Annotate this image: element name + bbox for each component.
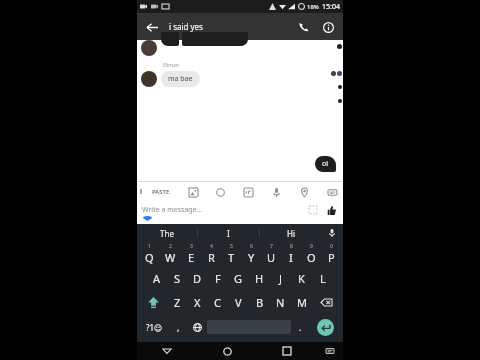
button[interactable]: Hi — [260, 224, 321, 242]
staticText: Write a message... — [142, 205, 203, 215]
button[interactable]: I — [198, 224, 259, 242]
staticText: 7 — [270, 243, 273, 250]
button[interactable]: V — [228, 290, 249, 314]
button[interactable]: Gallery — [186, 185, 200, 199]
staticText: L — [320, 271, 326, 286]
staticText: 18% — [307, 3, 319, 11]
staticText: E — [188, 250, 195, 265]
staticText: U — [267, 250, 276, 265]
button[interactable]: 1 — [139, 242, 160, 266]
button[interactable]: H — [249, 266, 270, 290]
staticText: ma bae — [168, 74, 193, 84]
button[interactable]: ma bae — [161, 71, 200, 87]
button[interactable]: D — [187, 266, 207, 290]
button[interactable]: Voice — [269, 185, 283, 199]
button[interactable]: A — [147, 266, 167, 290]
button[interactable]: Z — [167, 290, 187, 314]
button[interactable]: 9 — [301, 242, 321, 266]
button[interactable]: J — [270, 266, 291, 290]
button[interactable]: M — [291, 290, 312, 314]
staticText: Q — [145, 250, 154, 265]
button[interactable]: X — [187, 290, 207, 314]
button[interactable]: . — [291, 314, 309, 340]
staticText: F — [215, 271, 221, 286]
button[interactable]: 2 — [160, 242, 181, 266]
button[interactable]: , — [169, 314, 187, 340]
staticText: W — [165, 250, 176, 265]
staticText: 6 — [250, 243, 253, 250]
button[interactable]: Emoji — [213, 185, 227, 199]
staticText: I — [289, 250, 293, 265]
button[interactable]: Shift — [139, 290, 167, 314]
staticText: Y — [248, 250, 255, 265]
button[interactable]: Backspace — [312, 290, 341, 314]
staticText: C — [214, 295, 221, 310]
button[interactable]: 3 — [181, 242, 201, 266]
staticText: S — [174, 271, 181, 286]
staticText: T — [228, 250, 235, 265]
staticText: D — [193, 271, 202, 286]
button[interactable]: 0 — [321, 242, 341, 266]
button[interactable]: PASTE — [149, 186, 173, 198]
button[interactable]: More — [325, 185, 339, 199]
staticText: 8 — [290, 243, 293, 250]
button[interactable]: 7 — [261, 242, 281, 266]
staticText: R — [208, 250, 215, 265]
button[interactable]: 8 — [281, 242, 301, 266]
staticText: K — [298, 271, 305, 286]
button[interactable]: Sticker — [307, 204, 319, 216]
button[interactable]: The — [137, 224, 197, 242]
button[interactable]: Enter — [317, 319, 334, 336]
staticText: Z — [174, 295, 181, 310]
button[interactable]: GIF — [241, 185, 255, 199]
staticText: H — [255, 271, 264, 286]
staticText: Eliman — [163, 62, 179, 69]
button[interactable]: Location — [297, 185, 311, 199]
button[interactable]: Hide keyboard — [137, 342, 197, 360]
staticText: V — [235, 295, 242, 310]
staticText: oi — [322, 159, 329, 169]
button[interactable]: Home — [197, 342, 257, 360]
staticText: ?1☺ — [146, 322, 163, 333]
button[interactable]: L — [312, 266, 333, 290]
button[interactable]: Call — [295, 18, 313, 36]
staticText: X — [194, 295, 201, 310]
staticText: i said yes — [169, 21, 203, 32]
button[interactable]: Write a message... — [142, 205, 307, 215]
staticText: J — [279, 271, 283, 286]
button[interactable]: Voice input — [321, 224, 343, 242]
staticText: P — [328, 250, 335, 265]
button[interactable]: B — [249, 290, 270, 314]
staticText: 0 — [330, 243, 333, 250]
staticText: 3 — [190, 243, 193, 250]
staticText: A — [153, 271, 161, 286]
button[interactable]: C — [207, 290, 228, 314]
staticText: M — [297, 295, 307, 310]
staticText: 9 — [310, 243, 313, 250]
staticText: O — [307, 250, 316, 265]
button[interactable]: Language — [187, 314, 207, 340]
button[interactable]: 6 — [241, 242, 261, 266]
button[interactable]: Like — [324, 203, 338, 217]
staticText: , — [177, 321, 180, 333]
staticText: 15:04 — [322, 2, 340, 12]
button[interactable]: 4 — [201, 242, 221, 266]
button[interactable]: Details — [319, 18, 337, 36]
button[interactable]: K — [291, 266, 312, 290]
staticText: . — [299, 321, 302, 333]
button[interactable]: Switch keyboard — [317, 342, 343, 360]
staticText: N — [276, 295, 285, 310]
staticText: The — [160, 228, 174, 239]
button[interactable]: G — [228, 266, 249, 290]
button[interactable]: oi — [315, 156, 336, 172]
button[interactable]: F — [207, 266, 228, 290]
staticText: Hi — [287, 228, 295, 239]
button[interactable]: N — [270, 290, 291, 314]
button[interactable]: 5 — [221, 242, 241, 266]
button[interactable]: Back — [143, 18, 161, 36]
button[interactable]: Recents — [257, 342, 317, 360]
staticText: G — [234, 271, 243, 286]
button[interactable]: ?1☺ — [139, 314, 169, 340]
button[interactable]: S — [167, 266, 187, 290]
